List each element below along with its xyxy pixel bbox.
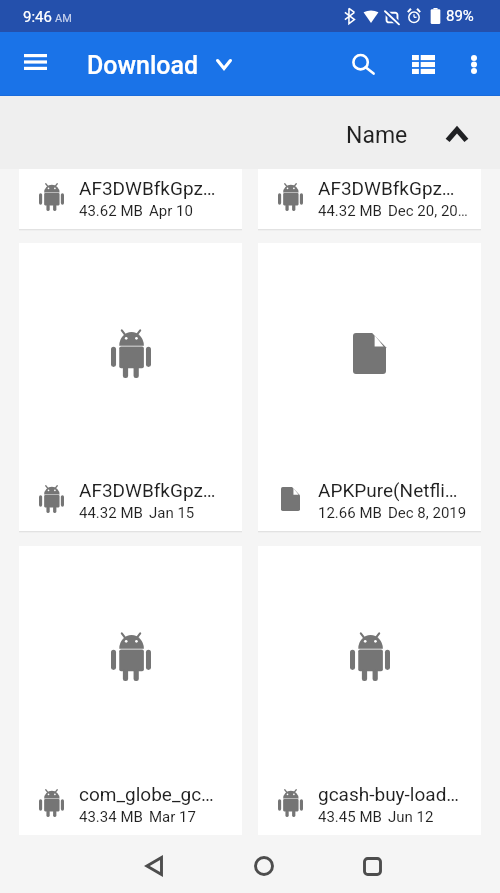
button[interactable]: AF3DWBfkGpz… <box>258 169 481 229</box>
button[interactable]: Name <box>324 96 500 169</box>
staticText: Apr 10 <box>149 202 193 220</box>
button[interactable]: Open navigation drawer <box>11 38 59 86</box>
staticText: AF3DWBfkGpz… <box>79 177 216 199</box>
staticText: gcash-buy-load… <box>318 783 460 805</box>
button[interactable]: More options <box>452 32 496 96</box>
staticText: 43.45 MB <box>318 808 382 826</box>
staticText: Dec 20, 20… <box>388 202 468 220</box>
staticText: AF3DWBfkGpz… <box>79 479 216 501</box>
button[interactable]: APKPure(Netfli… <box>258 243 481 531</box>
button[interactable]: Switch view layout <box>399 32 447 96</box>
staticText: 9:46 <box>23 8 52 26</box>
staticText: 12.66 MB <box>318 504 382 522</box>
button[interactable]: Back <box>125 837 183 893</box>
staticText: AM <box>55 12 72 25</box>
staticText: Name <box>346 122 408 149</box>
button[interactable]: Home <box>235 837 293 893</box>
staticText: APKPure(Netfli… <box>318 479 458 501</box>
staticText: Jan 15 <box>149 504 195 522</box>
staticText: Jun 12 <box>388 808 434 826</box>
staticText: Mar 17 <box>149 808 196 826</box>
staticText: 44.32 MB <box>79 504 143 522</box>
staticText: AF3DWBfkGpz… <box>318 177 455 199</box>
staticText: 43.62 MB <box>79 202 143 220</box>
button[interactable]: com_globe_gc… <box>19 546 242 835</box>
staticText: 89% <box>446 7 474 25</box>
button[interactable]: AF3DWBfkGpz… <box>19 169 242 229</box>
button[interactable]: AF3DWBfkGpz… <box>19 243 242 531</box>
button[interactable]: Search <box>339 32 387 96</box>
staticText: Download <box>87 51 199 80</box>
button[interactable]: Recent apps <box>343 837 401 893</box>
staticText: Dec 8, 2019 <box>388 504 467 522</box>
button[interactable]: Download <box>78 32 241 96</box>
staticText: 43.34 MB <box>79 808 143 826</box>
staticText: 44.32 MB <box>318 202 382 220</box>
staticText: com_globe_gc… <box>79 783 214 805</box>
button[interactable]: gcash-buy-load… <box>258 546 481 835</box>
